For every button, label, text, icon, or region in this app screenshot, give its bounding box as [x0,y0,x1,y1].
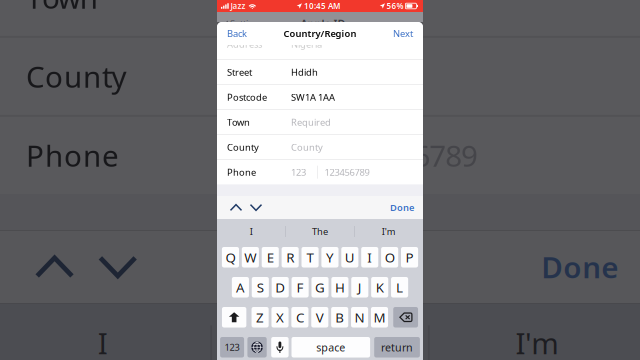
button[interactable]: J [351,277,368,297]
button[interactable]: R [282,247,299,267]
button[interactable]: W [242,247,259,267]
staticText: D [275,278,285,296]
button[interactable]: Previous field [226,197,246,217]
staticText: Apple ID [300,16,345,31]
button[interactable]: U [341,247,358,267]
button[interactable]: Dictation [271,337,289,357]
button[interactable]: Z [252,307,269,327]
button[interactable]: Shift [222,307,246,327]
staticText: G [315,278,325,296]
button[interactable]: 123 [220,337,244,357]
button[interactable]: C [291,307,308,327]
button[interactable]: W [242,247,259,267]
button[interactable]: H [331,277,348,297]
staticText: Address [227,38,262,50]
button[interactable]: A [232,277,249,297]
button[interactable]: Done [390,201,414,214]
staticText: I [367,248,372,266]
button[interactable]: Next keyboard [247,337,267,357]
button[interactable]: Q [222,247,239,267]
button[interactable]: Q [222,247,239,267]
button[interactable]: R [282,247,299,267]
button[interactable]: space [291,337,370,357]
button[interactable]: Y [321,247,338,267]
button[interactable]: return [374,337,420,357]
button[interactable]: S [252,277,269,297]
button[interactable]: P [401,247,418,267]
button[interactable]: N [351,307,368,327]
button[interactable]: G [311,277,329,297]
button[interactable]: T [301,247,319,267]
button[interactable]: V [311,307,328,327]
button[interactable]: K [371,277,388,297]
button[interactable]: Previous field [226,197,246,217]
button[interactable]: F [292,277,309,297]
button[interactable]: Next keyboard [247,337,267,357]
button[interactable]: The [286,219,354,244]
button[interactable]: E [262,247,279,267]
staticText: P [406,248,414,266]
button[interactable]: O [381,247,398,267]
button[interactable]: Dictation [271,337,289,357]
button[interactable]: L [391,277,408,297]
button[interactable]: Next field [246,197,266,217]
button[interactable]: X [271,307,289,327]
staticText: Done [390,201,414,214]
staticText: Town [227,116,250,128]
button[interactable]: L [391,277,408,297]
button[interactable]: Back [227,27,247,40]
staticText: A [236,278,245,296]
button[interactable]: D [272,277,289,297]
staticText: County [227,141,259,153]
staticText: I [250,225,253,238]
button[interactable]: B [331,307,348,327]
button[interactable]: space [291,337,370,357]
button[interactable]: U [341,247,358,267]
button[interactable]: I [361,247,378,267]
button[interactable]: 123 [220,337,244,357]
button[interactable]: C [291,307,308,327]
button[interactable]: I'm [355,219,423,244]
button[interactable]: M [371,307,388,327]
button[interactable]: I'm [355,219,423,244]
staticText: 56% [387,1,404,11]
button[interactable]: K [371,277,388,297]
button[interactable]: I [361,247,378,267]
button[interactable]: Shift [222,307,246,327]
button[interactable]: Done [390,201,414,214]
button[interactable]: H [331,277,348,297]
button[interactable]: Next field [246,197,266,217]
button[interactable]: E [262,247,279,267]
button[interactable]: B [331,307,348,327]
button[interactable]: P [401,247,418,267]
button[interactable]: N [351,307,368,327]
button[interactable]: F [292,277,309,297]
button[interactable]: The [286,219,354,244]
staticText: X [276,308,284,326]
button[interactable]: A [232,277,249,297]
button[interactable]: X [271,307,289,327]
button[interactable]: J [351,277,368,297]
staticText: B [335,308,344,326]
button[interactable]: D [272,277,289,297]
button[interactable]: Delete [393,307,418,327]
button[interactable]: V [311,307,328,327]
button[interactable]: Next [393,27,413,40]
button[interactable]: return [374,337,420,357]
staticText: 123 [225,341,240,353]
button[interactable]: I [217,219,285,244]
staticText: space [316,340,345,354]
staticText: S [257,278,264,296]
button[interactable]: Next [393,27,413,40]
button[interactable]: T [301,247,319,267]
button[interactable]: I [217,219,285,244]
button[interactable]: Delete [393,307,418,327]
button[interactable]: Z [252,307,269,327]
staticText: County [291,141,323,153]
button[interactable]: O [381,247,398,267]
button[interactable]: Y [321,247,338,267]
button[interactable]: G [311,277,329,297]
button[interactable]: S [252,277,269,297]
button[interactable]: Back [227,27,247,40]
button[interactable]: M [371,307,388,327]
